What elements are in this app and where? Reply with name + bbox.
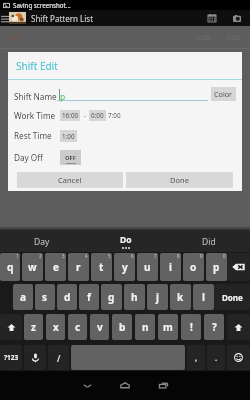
button[interactable]: v [90,314,109,340]
button[interactable]: g [101,284,122,310]
staticText: Off [9,32,21,42]
button[interactable]: Shift [227,314,250,340]
staticText: Shift Edit [16,59,58,73]
staticText: 7 [154,253,157,259]
staticText: Cancel [58,175,82,185]
staticText: l [202,290,205,304]
button[interactable]: r [68,253,89,281]
staticText: 1:00 [62,132,75,141]
staticText: g [108,290,115,304]
button[interactable]: x [46,314,65,340]
button[interactable]: Did [167,230,250,253]
button[interactable]: Navigation drawer [0,10,9,26]
staticText: ! [190,320,193,334]
staticText: p [213,260,220,274]
button[interactable]: i [160,253,181,281]
button[interactable]: t [91,253,112,281]
button[interactable]: p [206,253,227,281]
button[interactable]: f [79,284,99,310]
button[interactable]: c [68,314,87,340]
button[interactable]: z [24,314,43,340]
button[interactable]: p [57,88,208,101]
button[interactable]: Shift [0,314,22,340]
button[interactable]: 1:00 [60,130,77,142]
staticText: s [42,290,48,304]
button[interactable]: a [13,284,33,310]
staticText: 0:00 [226,32,241,42]
button[interactable]: Camera [224,10,250,26]
button[interactable]: . [207,345,225,370]
button[interactable]: 16:00 [60,110,80,121]
button[interactable]: w [22,253,43,281]
button[interactable]: d [57,284,77,310]
button[interactable]: Done [214,284,250,310]
button[interactable]: ! [181,314,201,340]
button[interactable]: , [187,345,205,370]
button[interactable]: Backspace [227,253,250,281]
button[interactable]: Do [84,230,167,253]
staticText: Rest Time [14,130,52,141]
staticText: Did [202,236,216,248]
button[interactable]: Done [126,172,233,188]
staticText: ?123 [4,353,19,362]
staticText: r [76,260,81,274]
staticText: d [64,290,71,304]
button[interactable]: ? [204,314,224,340]
button[interactable]: Day [0,230,84,253]
button[interactable]: e [45,253,66,281]
button[interactable]: Calendar [200,10,224,26]
staticText: 8 [177,253,180,259]
staticText: / [57,352,61,364]
button[interactable]: k [170,284,191,310]
button[interactable]: l [193,284,214,310]
button[interactable]: y [114,253,135,281]
staticText: k [177,290,184,304]
button[interactable]: 0:00 [89,110,106,121]
button[interactable]: / [48,345,69,370]
button[interactable]: Home [107,371,143,400]
button[interactable]: Recent apps [145,371,181,400]
button[interactable]: Emoji [227,345,250,370]
staticText: p [60,91,66,103]
button[interactable]: OFF [60,150,81,165]
button[interactable]: ?123 [0,345,22,370]
staticText: ? [212,320,217,334]
button[interactable]: q [0,253,20,281]
button[interactable]: Back [69,371,105,400]
staticText: z [31,320,36,334]
staticText: 3 [62,253,65,259]
staticText: h [131,290,138,304]
staticText: e [53,260,59,274]
button[interactable]: u [137,253,158,281]
staticText: a [20,290,26,304]
staticText: q [7,260,14,274]
button[interactable]: Voice input [24,345,46,370]
staticText: Shift Pattern List [31,13,94,24]
staticText: 16:00 [62,111,79,120]
button[interactable]: o [183,253,204,281]
staticText: 2 [39,253,42,259]
staticText: n [142,320,149,334]
staticText: 7:00 [108,111,121,120]
button[interactable]: Cancel [17,172,123,188]
button[interactable]: n [135,314,155,340]
staticText: w [28,260,37,274]
button[interactable]: b [112,314,132,340]
staticText: f [87,290,91,304]
button[interactable]: s [35,284,55,310]
staticText: . [215,352,218,363]
staticText: , [195,352,198,363]
staticText: 9 [200,253,203,259]
staticText: OFF [65,154,76,162]
button[interactable]: m [158,314,178,340]
button[interactable]: Color [211,87,236,101]
button[interactable]: h [124,284,145,310]
staticText: 6 [131,253,134,259]
staticText: j [156,290,159,304]
staticText: Done [222,292,243,303]
button[interactable]: j [147,284,168,310]
staticText: o [190,260,197,274]
staticText: Day Off [14,152,43,163]
staticText: i [169,260,172,274]
